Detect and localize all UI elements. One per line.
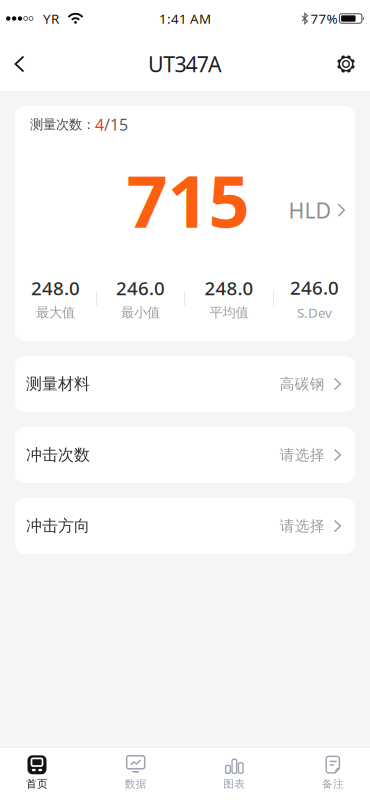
staticText: 4: [95, 114, 104, 135]
staticText: 备注: [322, 777, 344, 790]
staticText: /15: [104, 114, 128, 135]
staticText: 最大值: [36, 304, 75, 321]
staticText: 测量材料: [26, 374, 90, 394]
staticText: 请选择: [280, 446, 325, 464]
button[interactable]: [0, 55, 25, 72]
staticText: 请选择: [280, 517, 325, 535]
staticText: 平均值: [209, 304, 248, 321]
staticText: 最小值: [121, 304, 160, 321]
button[interactable]: 冲击次数: [15, 427, 355, 483]
button[interactable]: 图表: [219, 755, 249, 790]
staticText: 数据: [125, 777, 147, 790]
staticText: S.Dev: [297, 304, 332, 321]
staticText: 高碳钢: [280, 375, 325, 393]
staticText: 图表: [223, 777, 245, 790]
button[interactable]: 数据: [121, 755, 151, 790]
staticText: 715: [126, 152, 249, 248]
button[interactable]: HLD: [288, 196, 345, 224]
button[interactable]: 首页: [22, 755, 52, 790]
staticText: 246.0: [116, 276, 165, 300]
staticText: 首页: [26, 777, 48, 790]
button[interactable]: [335, 53, 370, 75]
button[interactable]: 备注: [318, 755, 348, 790]
staticText: 测量次数：: [30, 116, 95, 133]
staticText: 246.0: [290, 275, 339, 300]
button[interactable]: 测量材料: [15, 356, 355, 412]
staticText: 248.0: [204, 276, 253, 300]
staticText: 1:41 AM: [159, 10, 211, 27]
staticText: UT347A: [148, 50, 222, 78]
staticText: 248.0: [31, 276, 80, 300]
staticText: YR: [43, 10, 59, 27]
staticText: HLD: [288, 196, 331, 224]
staticText: 77%: [310, 10, 337, 27]
button[interactable]: 冲击方向: [15, 498, 355, 554]
staticText: 冲击方向: [26, 516, 90, 536]
staticText: 冲击次数: [26, 445, 90, 465]
